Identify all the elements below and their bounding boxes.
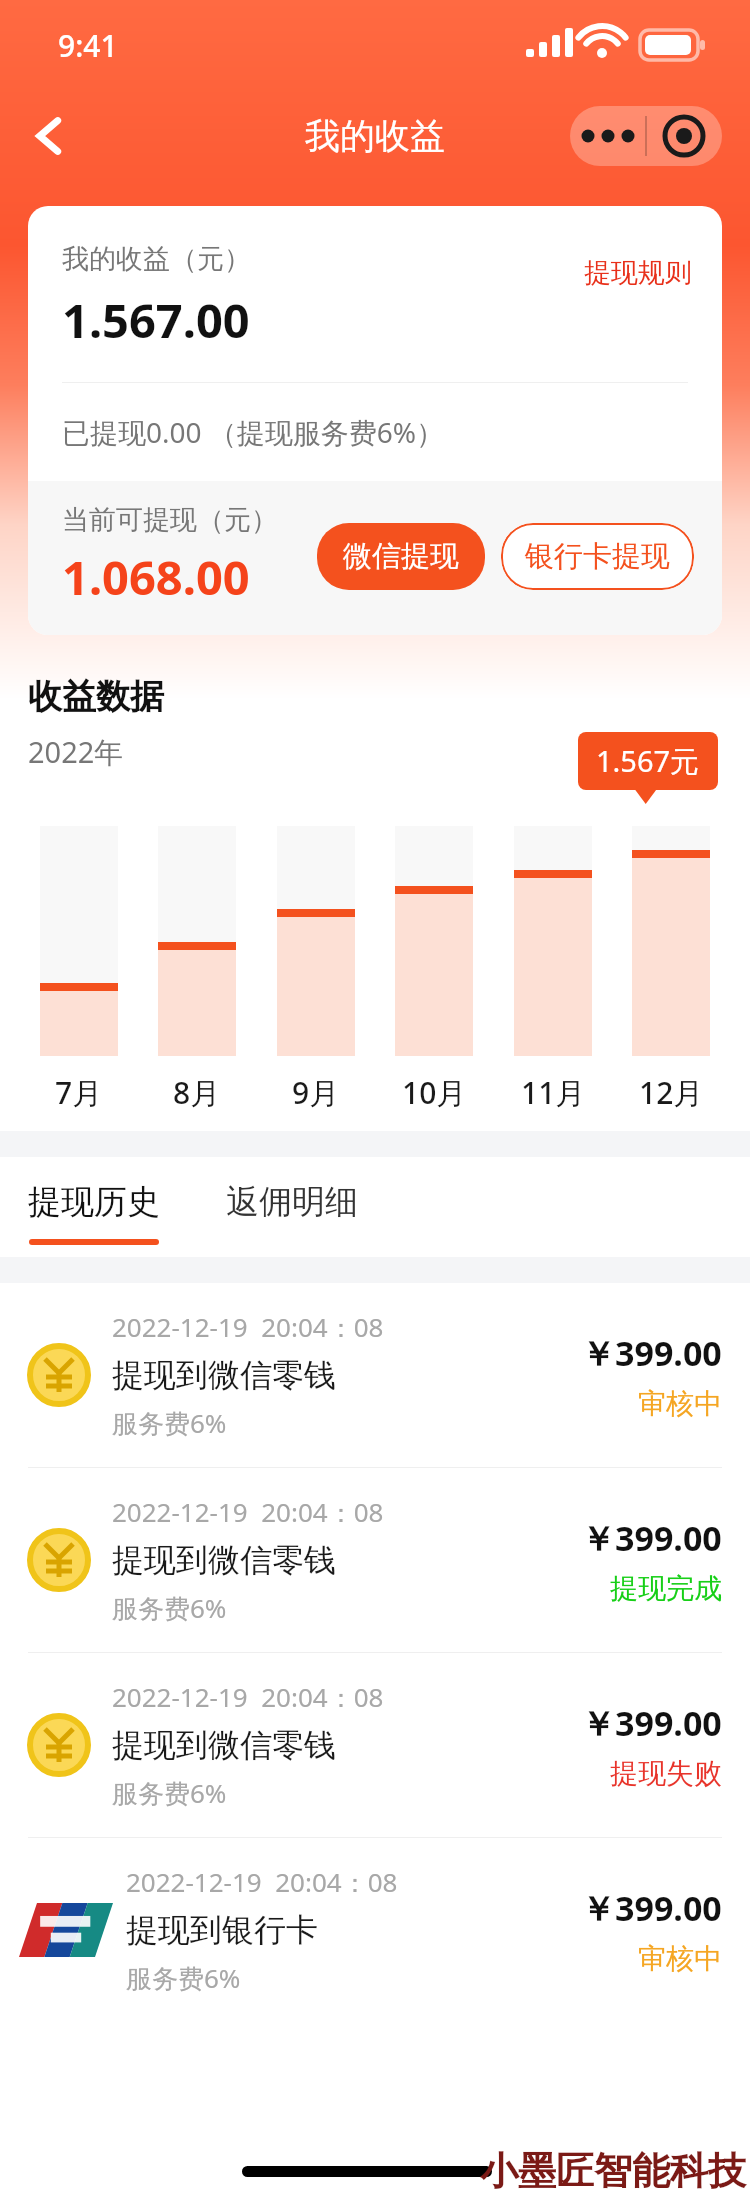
- staticText: 10月: [402, 1072, 467, 1113]
- staticText: 11月: [521, 1072, 586, 1113]
- button[interactable]: 提现历史: [28, 1157, 160, 1245]
- staticText: 1.567.00: [62, 288, 250, 352]
- staticText: ￥399.00: [581, 1515, 722, 1561]
- staticText: 1.068.00: [62, 545, 250, 609]
- staticText: 提现完成: [610, 1571, 722, 1606]
- staticText: 服务费6%: [112, 1590, 227, 1626]
- staticText: 服务费6%: [126, 1960, 241, 1996]
- staticText: 2022-12-19 20:04：08: [112, 1494, 384, 1530]
- staticText: 我的收益（元）: [62, 242, 251, 276]
- staticText: 9:41: [58, 25, 118, 66]
- staticText: 1.567元: [596, 741, 700, 781]
- button[interactable]: Back: [18, 104, 82, 168]
- button[interactable]: 银行卡提现: [501, 523, 694, 590]
- staticText: 提现历史: [28, 1181, 160, 1223]
- staticText: 12月: [639, 1072, 704, 1113]
- staticText: 2022-12-19 20:04：08: [126, 1864, 398, 1900]
- staticText: 提现到微信零钱: [112, 1725, 336, 1765]
- staticText: 返佣明细: [226, 1181, 358, 1223]
- staticText: 银行卡提现: [525, 538, 670, 575]
- staticText: 提现规则: [584, 256, 692, 290]
- button[interactable]: 2022-12-19 20:04：08: [0, 1283, 750, 1467]
- staticText: ￥399.00: [581, 1885, 722, 1931]
- button[interactable]: 2022-12-19 20:04：08: [0, 1468, 750, 1652]
- staticText: 审核中: [638, 1941, 722, 1976]
- staticText: 2022-12-19 20:04：08: [112, 1679, 384, 1715]
- staticText: 2022年: [28, 732, 124, 772]
- staticText: 7月: [55, 1072, 103, 1113]
- staticText: 微信提现: [343, 538, 459, 575]
- staticText: 2022-12-19 20:04：08: [112, 1309, 384, 1345]
- staticText: ￥399.00: [581, 1330, 722, 1376]
- staticText: 9月: [292, 1072, 340, 1113]
- button[interactable]: 微信提现: [317, 523, 485, 590]
- staticText: 服务费6%: [112, 1405, 227, 1441]
- button[interactable]: 提现规则: [584, 256, 692, 290]
- staticText: 提现到微信零钱: [112, 1540, 336, 1580]
- staticText: 8月: [173, 1072, 221, 1113]
- staticText: 审核中: [638, 1386, 722, 1421]
- staticText: 已提现0.00 （提现服务费6%）: [62, 413, 445, 451]
- staticText: 收益数据: [28, 675, 164, 718]
- button[interactable]: 返佣明细: [226, 1181, 358, 1223]
- staticText: 小墨匠智能科技: [480, 2147, 746, 2195]
- button[interactable]: Menu: [570, 106, 722, 166]
- button[interactable]: 2022-12-19 20:04：08: [0, 1653, 750, 1837]
- staticText: 提现到微信零钱: [112, 1355, 336, 1395]
- staticText: 我的收益: [305, 114, 445, 158]
- button[interactable]: 2022-12-19 20:04：08: [0, 1838, 750, 2022]
- staticText: 服务费6%: [112, 1775, 227, 1811]
- staticText: 提现失败: [610, 1756, 722, 1791]
- staticText: ￥399.00: [581, 1700, 722, 1746]
- staticText: 当前可提现（元）: [62, 503, 278, 537]
- staticText: 提现到银行卡: [126, 1910, 318, 1950]
